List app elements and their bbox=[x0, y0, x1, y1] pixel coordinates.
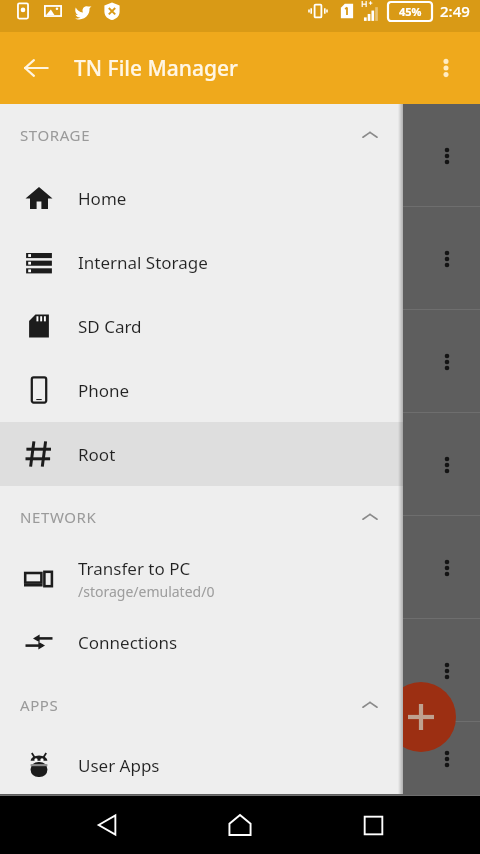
staticText: Connections bbox=[78, 631, 178, 654]
staticText: SD Card bbox=[78, 315, 142, 338]
button[interactable]: Item menu bbox=[0, 516, 480, 619]
button[interactable]: Connections bbox=[0, 610, 403, 674]
button[interactable]: User Apps bbox=[0, 736, 403, 794]
staticText: /storage/emulated/0 bbox=[78, 582, 215, 601]
other: Item menu bbox=[432, 744, 462, 774]
staticText: Home bbox=[78, 187, 127, 210]
staticText: APPS bbox=[20, 695, 59, 715]
button[interactable]: Item menu bbox=[0, 104, 480, 207]
staticText: 2:49 bbox=[440, 1, 470, 21]
button[interactable]: Item menu bbox=[0, 722, 480, 796]
button[interactable]: Home bbox=[214, 799, 266, 851]
button[interactable]: Item menu bbox=[0, 310, 480, 413]
other: Item menu bbox=[432, 450, 462, 480]
button[interactable]: Back bbox=[8, 40, 64, 96]
staticText: User Apps bbox=[78, 754, 160, 777]
staticText: 45% bbox=[399, 4, 422, 19]
staticText: Root bbox=[78, 443, 116, 466]
button[interactable]: Back bbox=[81, 799, 133, 851]
button[interactable]: Item menu bbox=[0, 619, 480, 722]
button[interactable]: More options bbox=[420, 42, 472, 94]
other: Item menu bbox=[432, 244, 462, 274]
button[interactable]: Recents bbox=[347, 799, 399, 851]
button[interactable]: Home bbox=[0, 166, 403, 230]
other: Item menu bbox=[432, 141, 462, 171]
button[interactable]: APPS bbox=[0, 674, 403, 736]
button[interactable]: Item menu bbox=[0, 207, 480, 310]
button[interactable]: NETWORK bbox=[0, 486, 403, 548]
button[interactable]: Add bbox=[386, 682, 456, 752]
button[interactable]: SD Card bbox=[0, 294, 403, 358]
other: Item menu bbox=[432, 553, 462, 583]
button[interactable]: Internal Storage bbox=[0, 230, 403, 294]
button[interactable]: STORAGE bbox=[0, 104, 403, 166]
button[interactable]: Root bbox=[0, 422, 403, 486]
staticText: NETWORK bbox=[20, 507, 97, 527]
button[interactable]: Transfer to PC bbox=[0, 548, 403, 610]
staticText: Transfer to PC bbox=[78, 557, 191, 580]
other: Item menu bbox=[432, 347, 462, 377]
button[interactable]: Phone bbox=[0, 358, 403, 422]
staticText: TN File Manager bbox=[74, 54, 238, 83]
staticText: Internal Storage bbox=[78, 251, 208, 274]
button[interactable]: Item menu bbox=[0, 413, 480, 516]
staticText: Phone bbox=[78, 379, 130, 402]
staticText: STORAGE bbox=[20, 125, 91, 145]
other: Item menu bbox=[432, 656, 462, 686]
